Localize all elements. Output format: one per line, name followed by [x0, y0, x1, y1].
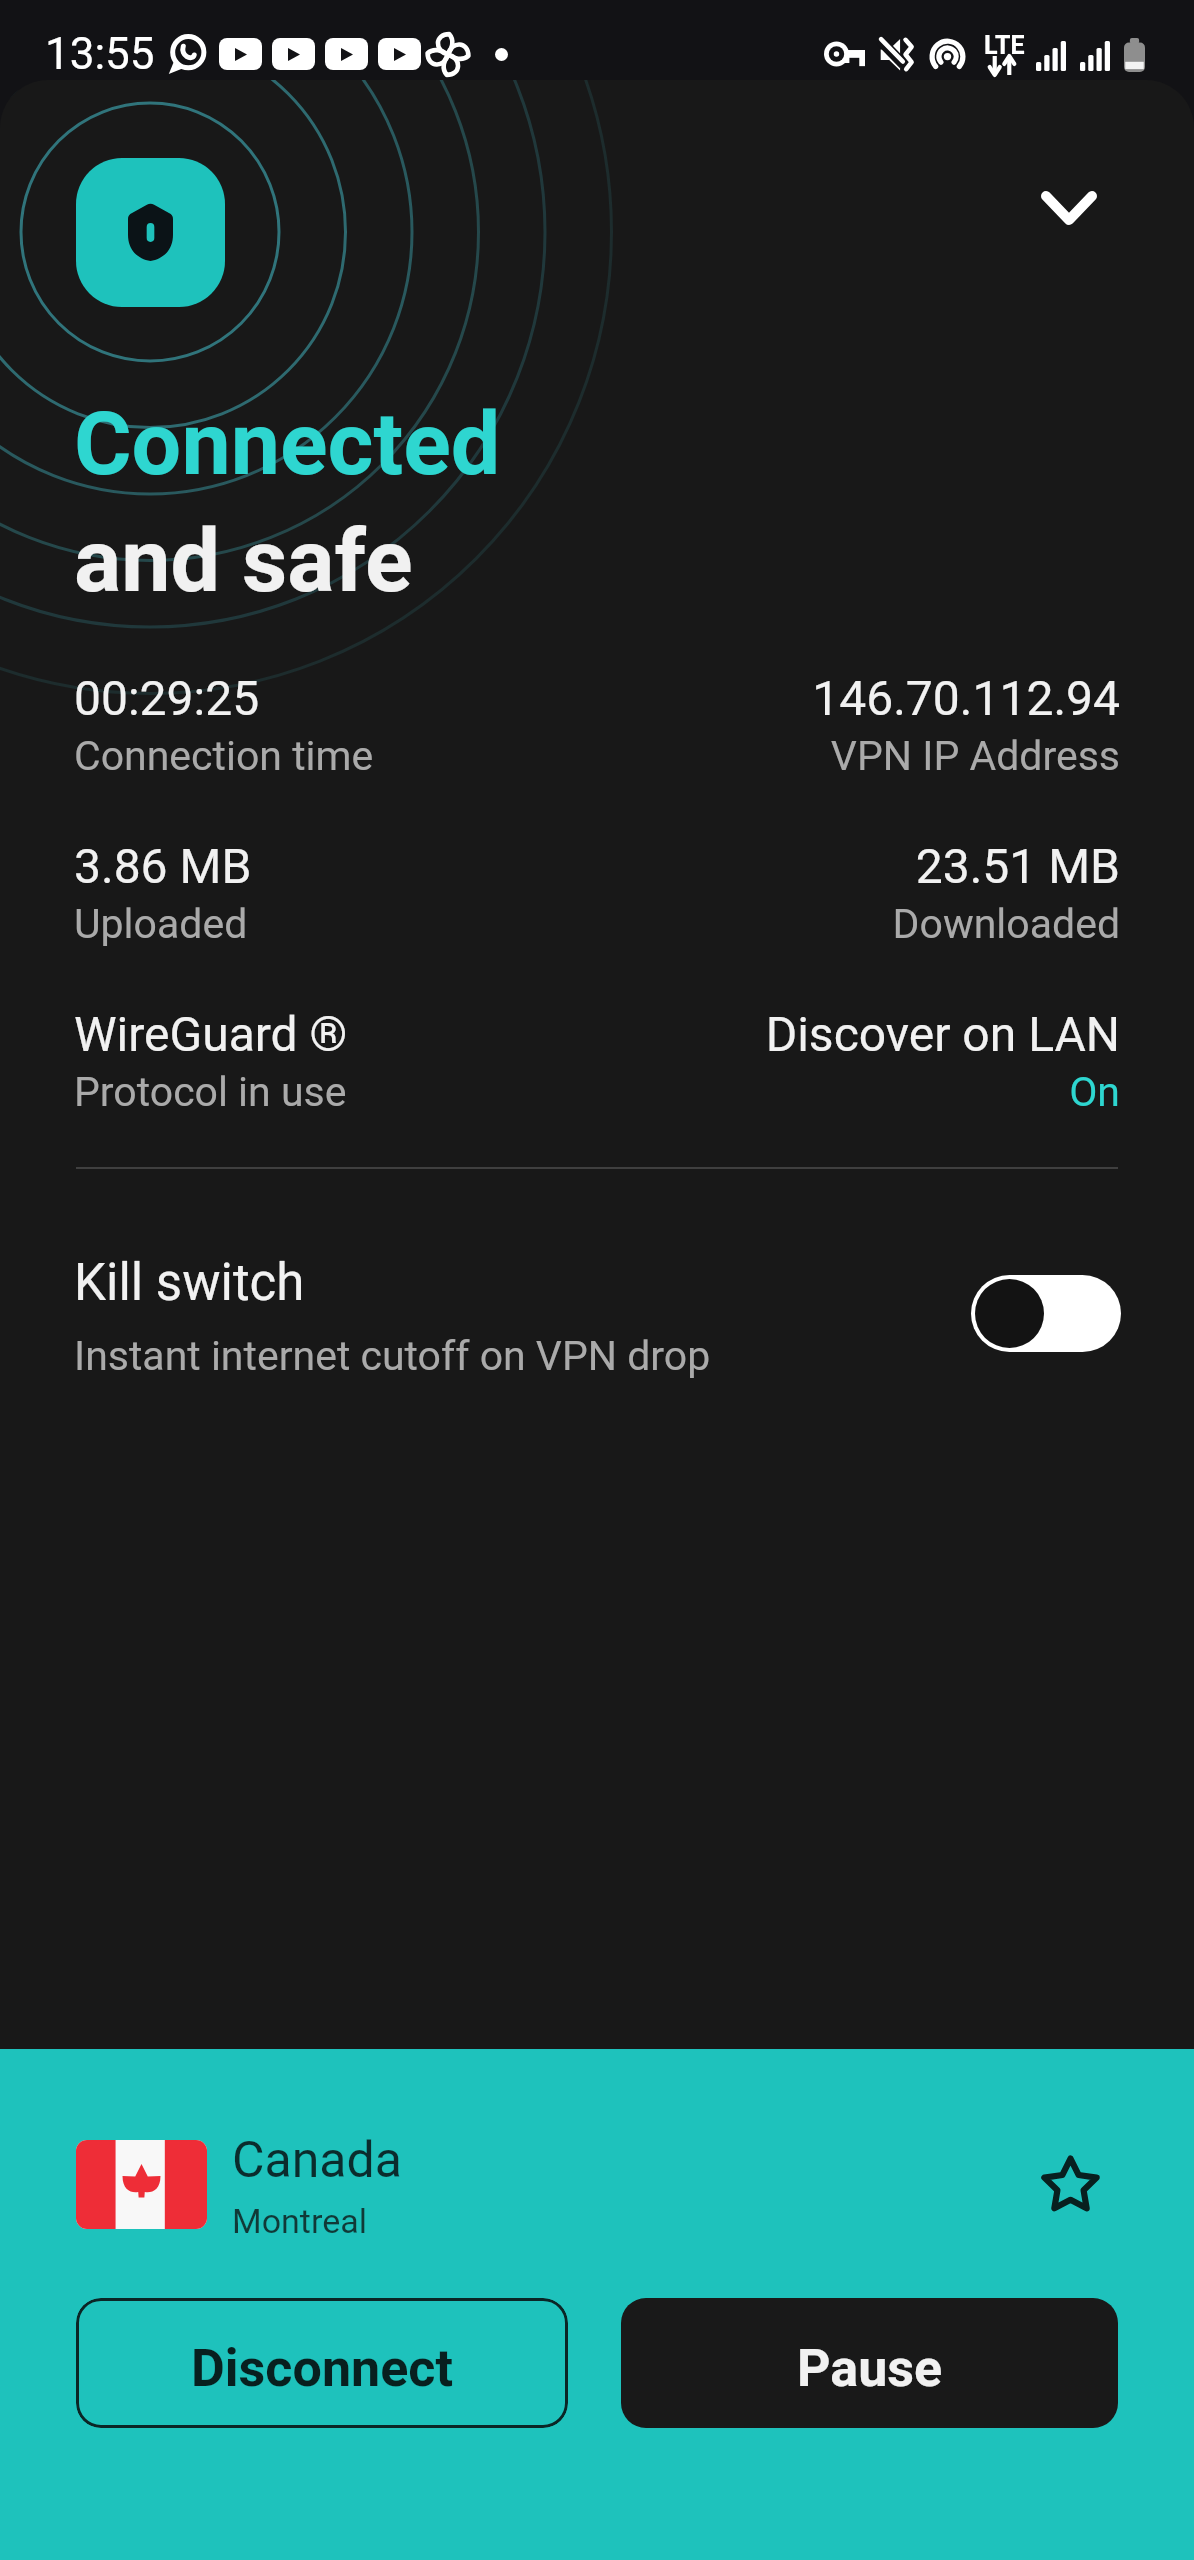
staticText: Montreal — [232, 2201, 367, 2241]
button[interactable]: Pause — [621, 2298, 1118, 2428]
staticText: and safe — [74, 509, 413, 612]
button[interactable]: Add location to favourites — [1025, 2139, 1115, 2229]
staticText: Downloaded — [892, 900, 1120, 948]
staticText: 00:29:25 — [74, 670, 260, 726]
staticText: Protocol in use — [74, 1068, 347, 1116]
staticText: 23.51 MB — [915, 838, 1120, 894]
button[interactable]: Collapse connection details — [1024, 163, 1114, 253]
staticText: 3.86 MB — [74, 838, 252, 894]
staticText: LTE — [984, 31, 1025, 60]
staticText: 13:55 — [45, 28, 155, 80]
staticText: Connected — [74, 392, 501, 495]
staticText: 146.70.112.94 — [812, 670, 1120, 726]
button[interactable]: Kill switch — [0, 1240, 1194, 1390]
staticText: Pause — [797, 2338, 943, 2399]
staticText: VPN IP Address — [830, 732, 1120, 780]
staticText: On — [1069, 1068, 1120, 1116]
staticText: Discover on LAN — [765, 1006, 1120, 1062]
staticText: Canada — [232, 2131, 402, 2190]
staticText: Disconnect — [191, 2338, 453, 2399]
staticText: Uploaded — [74, 900, 248, 948]
button[interactable]: Disconnect — [76, 2298, 568, 2428]
staticText: Instant internet cutoff on VPN drop — [74, 1332, 711, 1380]
staticText: Kill switch — [74, 1253, 305, 1313]
staticText: WireGuard ® — [74, 1006, 348, 1062]
staticText: Connection time — [74, 732, 374, 780]
